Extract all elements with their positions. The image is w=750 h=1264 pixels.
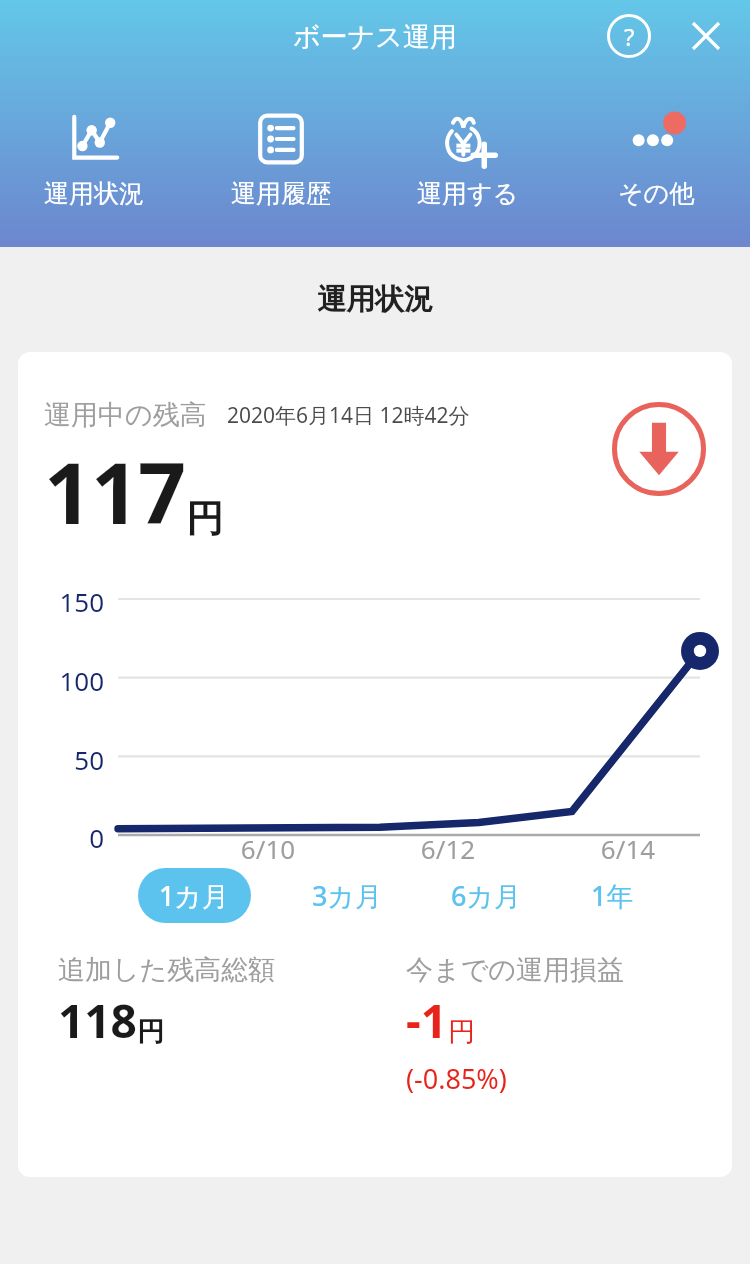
staticText: 円 <box>448 1015 475 1049</box>
staticText: 1年 <box>591 877 634 914</box>
staticText: 0 <box>18 820 104 855</box>
button[interactable]: 運用状況 <box>0 104 187 209</box>
staticText: 円 <box>186 495 223 542</box>
button[interactable]: Close <box>678 8 734 64</box>
staticText: その他 <box>618 178 695 209</box>
staticText: 運用状況 <box>317 281 433 318</box>
staticText: 118 <box>58 989 137 1052</box>
staticText: 運用中の残高 <box>44 398 207 432</box>
staticText: 円 <box>137 1015 164 1049</box>
staticText: -1 <box>406 989 448 1052</box>
button[interactable]: その他 <box>562 104 750 209</box>
staticText: 運用履歴 <box>231 178 331 209</box>
staticText: 50 <box>18 742 104 777</box>
button[interactable]: 運用履歴 <box>187 104 374 209</box>
button[interactable]: Decrease <box>610 400 708 498</box>
staticText: 6/12 <box>358 831 538 866</box>
staticText: 1カ月 <box>159 877 230 914</box>
staticText: 6カ月 <box>451 877 522 914</box>
staticText: 2020年6月14日 12時42分 <box>227 401 470 430</box>
button[interactable]: 6カ月 <box>443 868 530 923</box>
staticText: 運用状況 <box>44 178 144 209</box>
staticText: 追加した残高総額 <box>58 953 276 987</box>
staticText: 3カ月 <box>312 877 383 914</box>
staticText: ボーナス運用 <box>293 20 457 54</box>
button[interactable]: Help <box>601 8 657 64</box>
staticText: ? <box>624 20 635 53</box>
button[interactable]: 1カ月 <box>138 868 251 923</box>
staticText: 6/10 <box>178 831 358 866</box>
staticText: 6/14 <box>538 831 718 866</box>
button[interactable]: 3カ月 <box>304 868 391 923</box>
staticText: 117 <box>44 434 186 548</box>
staticText: 今までの運用損益 <box>406 953 624 987</box>
button[interactable]: 運用する <box>374 104 562 209</box>
staticText: 100 <box>18 663 104 698</box>
staticText: (-0.85%) <box>406 1060 507 1097</box>
button[interactable]: 1年 <box>583 868 642 923</box>
staticText: 運用する <box>417 178 519 209</box>
staticText: 150 <box>18 584 104 619</box>
